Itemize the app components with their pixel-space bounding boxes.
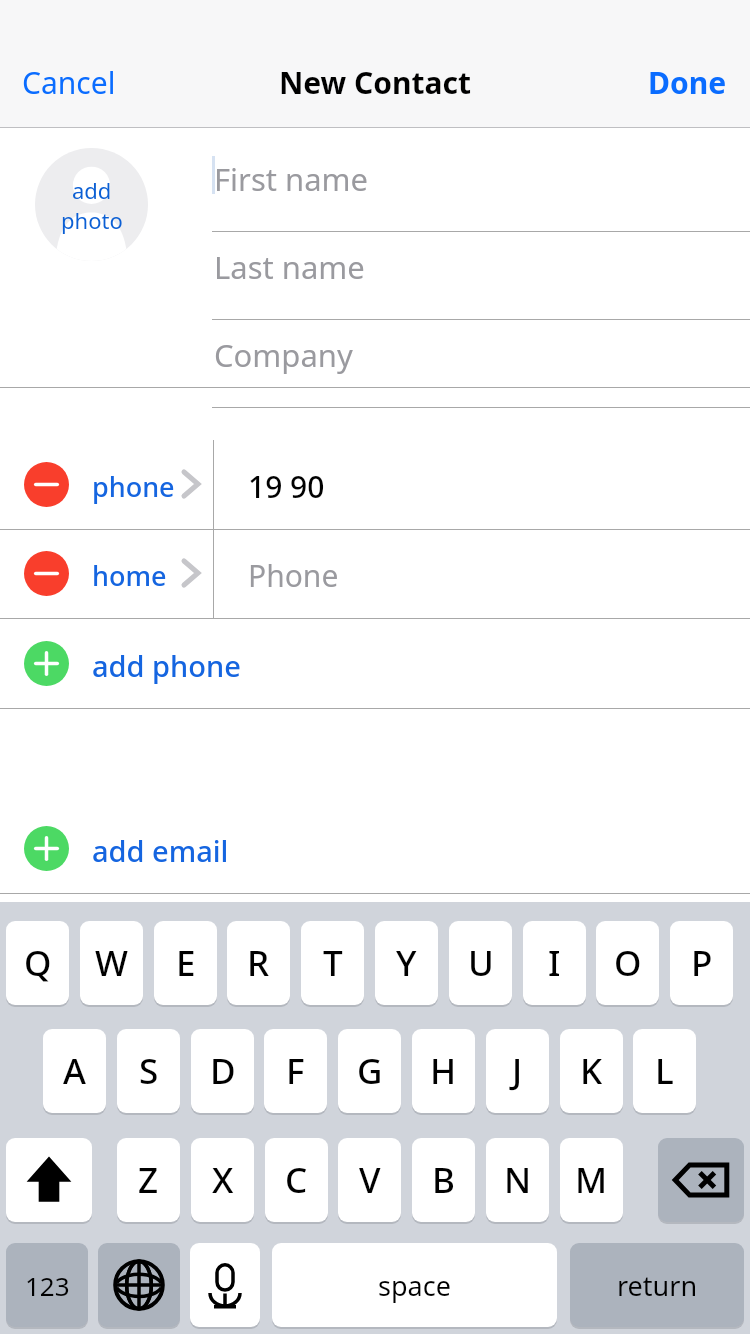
staticText: D	[210, 1047, 236, 1095]
button[interactable]: V	[338, 1138, 401, 1222]
staticText: N	[504, 1156, 532, 1204]
button[interactable]: T	[301, 921, 364, 1005]
staticText: add	[72, 175, 112, 205]
staticText: G	[357, 1047, 383, 1095]
button[interactable]: add photo	[35, 148, 148, 261]
staticText: C	[285, 1156, 308, 1204]
button[interactable]: Y	[375, 921, 438, 1005]
staticText: 123	[25, 1268, 70, 1303]
button[interactable]: Z	[117, 1138, 180, 1222]
staticText: P	[691, 939, 713, 987]
staticText: T	[323, 939, 343, 987]
staticText: H	[430, 1047, 457, 1095]
button[interactable]: A	[43, 1029, 106, 1113]
staticText: A	[63, 1047, 86, 1095]
button[interactable]: M	[560, 1138, 623, 1222]
staticText: V	[359, 1156, 381, 1204]
staticText: U	[468, 939, 494, 987]
staticText: Phone	[248, 555, 339, 596]
button[interactable]: Cancel	[12, 56, 126, 109]
button[interactable]: Dictation	[190, 1243, 260, 1327]
button[interactable]: Shift	[6, 1138, 92, 1222]
staticText: F	[286, 1047, 305, 1095]
staticText: Cancel	[22, 62, 116, 103]
button[interactable]: D	[191, 1029, 254, 1113]
button[interactable]: O	[596, 921, 659, 1005]
button[interactable]: F	[264, 1029, 327, 1113]
button[interactable]: add email	[0, 803, 750, 893]
staticText: L	[655, 1047, 674, 1095]
button[interactable]: L	[633, 1029, 696, 1113]
button[interactable]: First name	[212, 144, 750, 232]
staticText: space	[378, 1267, 451, 1304]
button[interactable]: B	[412, 1138, 475, 1222]
staticText: E	[176, 939, 196, 987]
staticText: O	[614, 939, 642, 987]
button[interactable]: P	[670, 921, 733, 1005]
button[interactable]: C	[265, 1138, 328, 1222]
staticText: Company	[214, 334, 353, 376]
staticText: Last name	[214, 246, 365, 288]
button[interactable]: return	[570, 1243, 744, 1327]
button[interactable]: N	[486, 1138, 549, 1222]
staticText: Z	[138, 1156, 159, 1204]
button[interactable]: S	[117, 1029, 180, 1113]
staticText: K	[580, 1047, 603, 1095]
button[interactable]: Remove phone	[24, 462, 69, 507]
button[interactable]: G	[338, 1029, 401, 1113]
button[interactable]: K	[560, 1029, 623, 1113]
staticText: Q	[24, 939, 52, 987]
button[interactable]: R	[227, 921, 290, 1005]
staticText: R	[247, 939, 270, 987]
button[interactable]: Remove home	[0, 529, 750, 618]
staticText: photo	[61, 205, 123, 235]
staticText: New Contact	[0, 62, 750, 103]
staticText: J	[512, 1047, 523, 1095]
staticText: X	[212, 1156, 234, 1204]
button[interactable]: space	[272, 1243, 557, 1327]
staticText: add email	[92, 831, 229, 870]
button[interactable]: H	[412, 1029, 475, 1113]
staticText: home	[92, 557, 167, 594]
button[interactable]: E	[154, 921, 217, 1005]
button[interactable]: U	[449, 921, 512, 1005]
staticText: Done	[648, 62, 727, 103]
staticText: add phone	[92, 646, 241, 685]
button[interactable]: Remove home	[24, 551, 69, 596]
button[interactable]: Done	[638, 56, 737, 109]
button[interactable]: I	[523, 921, 586, 1005]
staticText: I	[548, 939, 561, 987]
button[interactable]: W	[80, 921, 143, 1005]
button[interactable]: Backspace	[658, 1138, 744, 1222]
staticText: phone	[92, 468, 175, 505]
button[interactable]: Last name	[212, 232, 750, 320]
staticText: Y	[396, 939, 417, 987]
staticText: 19 90	[248, 466, 325, 507]
button[interactable]: Change keyboard	[98, 1243, 180, 1327]
staticText: return	[617, 1267, 698, 1304]
button[interactable]: J	[486, 1029, 549, 1113]
staticText: S	[139, 1047, 159, 1095]
staticText: B	[432, 1156, 455, 1204]
button[interactable]: Remove phone	[0, 440, 750, 529]
button[interactable]: Company	[212, 320, 750, 408]
staticText: M	[575, 1156, 608, 1204]
staticText: W	[95, 939, 128, 987]
button[interactable]: add phone	[0, 618, 750, 708]
button[interactable]: 123	[6, 1243, 88, 1327]
button[interactable]: Q	[6, 921, 69, 1005]
staticText: First name	[214, 158, 369, 200]
button[interactable]: X	[191, 1138, 254, 1222]
